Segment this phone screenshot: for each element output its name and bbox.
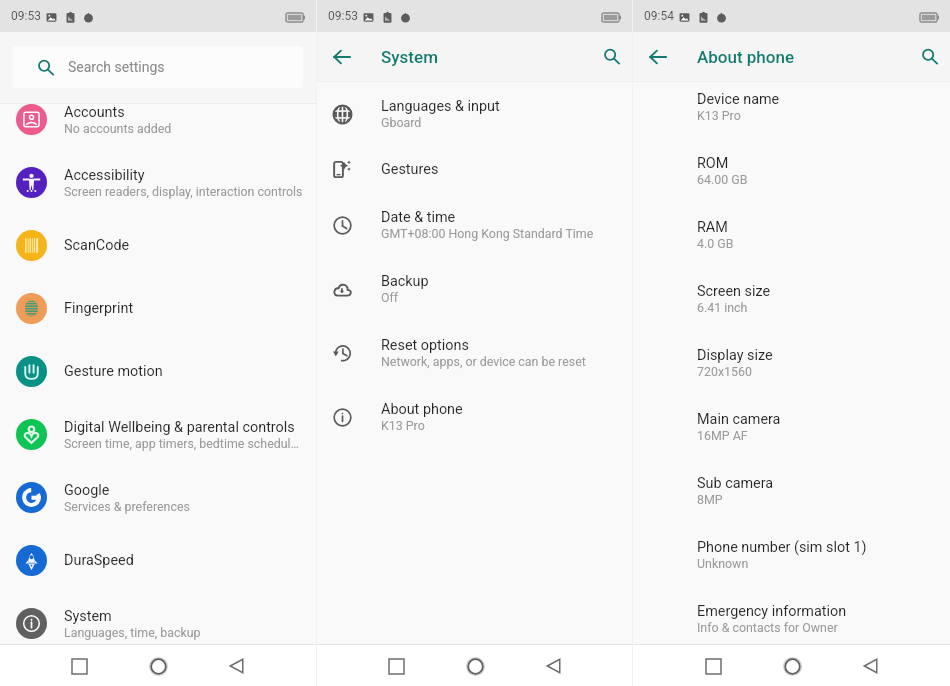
button[interactable]: Languages & input <box>317 82 632 146</box>
button[interactable]: RAM <box>633 210 950 274</box>
staticText: Display size <box>697 347 773 364</box>
button[interactable]: Accessibility <box>0 151 316 214</box>
button[interactable]: Date & time <box>317 193 632 257</box>
button[interactable]: System <box>0 592 316 644</box>
button[interactable]: Screen size <box>633 274 950 338</box>
button[interactable]: Gestures <box>317 146 632 193</box>
staticText: Off <box>381 290 399 305</box>
staticText: Digital Wellbeing & parental controls <box>64 419 295 436</box>
staticText: Network, apps, or device can be reset <box>381 354 586 369</box>
button[interactable]: ROM <box>633 146 950 210</box>
button[interactable]: Recents <box>693 646 733 686</box>
button[interactable]: Fingerprint <box>0 277 316 340</box>
button[interactable]: Device name <box>633 82 950 146</box>
button[interactable]: Home <box>772 646 812 686</box>
staticText: 4.0 GB <box>697 236 734 251</box>
staticText: K13 Pro <box>697 108 741 123</box>
staticText: Main camera <box>697 411 781 428</box>
button[interactable]: Emergency information <box>633 594 950 644</box>
staticText: 6.41 inch <box>697 300 748 315</box>
button[interactable]: Back <box>534 646 574 686</box>
button[interactable]: Back <box>851 646 891 686</box>
button[interactable]: Home <box>455 646 495 686</box>
staticText: DuraSpeed <box>64 552 134 569</box>
staticText: Emergency information <box>697 603 847 620</box>
staticText: Accessibility <box>64 167 145 184</box>
button[interactable]: ScanCode <box>0 214 316 277</box>
staticText: Languages & input <box>381 98 500 115</box>
staticText: Search settings <box>68 59 165 75</box>
staticText: No accounts added <box>64 121 172 136</box>
staticText: 16MP AF <box>697 428 748 443</box>
staticText: 09:54 <box>644 9 674 23</box>
staticText: Phone number (sim slot 1) <box>697 539 867 556</box>
button[interactable]: Recents <box>376 646 416 686</box>
button[interactable]: Search <box>913 40 946 73</box>
button[interactable]: Back <box>641 40 674 73</box>
staticText: System <box>64 608 112 625</box>
staticText: ROM <box>697 155 729 172</box>
staticText: Gesture motion <box>64 363 163 380</box>
staticText: Screen size <box>697 283 771 300</box>
button[interactable]: Sub camera <box>633 466 950 530</box>
staticText: K13 Pro <box>381 418 425 433</box>
staticText: About phone <box>697 47 795 67</box>
button[interactable]: Accounts <box>0 104 316 151</box>
button[interactable]: Back <box>217 646 257 686</box>
button[interactable]: Display size <box>633 338 950 402</box>
staticText: System <box>381 47 438 67</box>
staticText: Unknown <box>697 556 749 571</box>
staticText: Device name <box>697 91 780 108</box>
staticText: Screen readers, display, interaction con… <box>64 184 303 199</box>
button[interactable]: Backup <box>317 257 632 321</box>
button[interactable]: Back <box>325 40 358 73</box>
staticText: Gestures <box>381 161 439 178</box>
staticText: 8MP <box>697 492 723 507</box>
staticText: Reset options <box>381 337 469 354</box>
staticText: Date & time <box>381 209 456 226</box>
staticText: About phone <box>381 401 463 418</box>
staticText: Gboard <box>381 115 422 130</box>
staticText: Info & contacts for Owner <box>697 620 838 635</box>
button[interactable]: Home <box>138 646 178 686</box>
staticText: Languages, time, backup <box>64 625 201 640</box>
staticText: ScanCode <box>64 237 130 254</box>
button[interactable]: Gesture motion <box>0 340 316 403</box>
staticText: Services & preferences <box>64 499 190 514</box>
staticText: Fingerprint <box>64 300 134 317</box>
button[interactable]: Search settings <box>13 46 303 88</box>
staticText: 64.00 GB <box>697 172 748 187</box>
button[interactable]: Digital Wellbeing & parental controls <box>0 403 316 466</box>
button[interactable]: Main camera <box>633 402 950 466</box>
button[interactable]: DuraSpeed <box>0 529 316 592</box>
staticText: Screen time, app timers, bedtime schedul… <box>64 436 299 451</box>
staticText: GMT+08:00 Hong Kong Standard Time <box>381 226 594 241</box>
staticText: 09:53 <box>328 9 358 23</box>
staticText: 09:53 <box>11 9 41 23</box>
button[interactable]: About phone <box>317 385 632 449</box>
staticText: 720x1560 <box>697 364 752 379</box>
staticText: RAM <box>697 219 728 236</box>
staticText: Accounts <box>64 104 125 121</box>
button[interactable]: Search <box>595 40 628 73</box>
button[interactable]: Google <box>0 466 316 529</box>
button[interactable]: Recents <box>59 646 99 686</box>
staticText: Backup <box>381 273 429 290</box>
staticText: Sub camera <box>697 475 774 492</box>
staticText: Google <box>64 482 110 499</box>
button[interactable]: Reset options <box>317 321 632 385</box>
button[interactable]: Phone number (sim slot 1) <box>633 530 950 594</box>
